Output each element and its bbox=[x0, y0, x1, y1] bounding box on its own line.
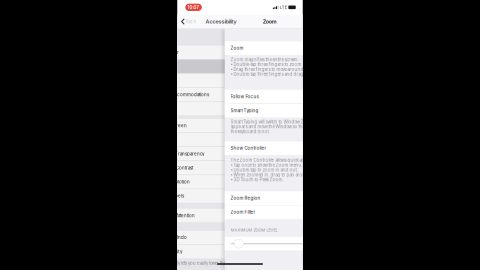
staticText: • Double-tap to zoom in and out. bbox=[231, 167, 298, 173]
staticText: Show Controller bbox=[231, 146, 267, 151]
staticText: Follow Focus bbox=[231, 94, 259, 99]
button[interactable]: Shake to Undo bbox=[150, 231, 276, 244]
staticText: Smart Typing bbox=[231, 108, 259, 113]
staticText: Increase Contrast bbox=[156, 165, 193, 170]
staticText: VoiceOver bbox=[156, 50, 179, 55]
button[interactable]: Reachability bbox=[150, 245, 276, 258]
staticText: Reachability lets you easily lower the t… bbox=[156, 261, 256, 266]
button[interactable]: Smart Typing bbox=[225, 104, 350, 117]
staticText: Speak Screen bbox=[156, 123, 187, 128]
button[interactable]: Face ID & Attention bbox=[150, 209, 276, 222]
button[interactable]: Zoom bbox=[150, 60, 276, 73]
staticText: The Zoom Controller allows quick access … bbox=[231, 158, 332, 163]
button[interactable]: VoiceOver bbox=[150, 46, 276, 59]
button[interactable]: Zoom Region bbox=[225, 191, 350, 205]
button[interactable]: Back bbox=[177, 15, 198, 28]
staticText: On/Off Labels bbox=[156, 193, 184, 199]
button[interactable]: Speech bbox=[150, 102, 276, 115]
staticText: Face ID & Attention bbox=[156, 213, 195, 218]
staticText: Zoom bbox=[263, 18, 277, 25]
button[interactable]: Reduce Transparency bbox=[150, 147, 276, 161]
staticText: 10:07 bbox=[188, 5, 200, 10]
button[interactable]: Zoom bbox=[225, 41, 350, 55]
staticText: MAXIMUM ZOOM LEVEL bbox=[231, 227, 278, 232]
button[interactable]: Follow Focus bbox=[225, 90, 350, 103]
staticText: Zoom bbox=[231, 45, 244, 51]
staticText: Shake to Undo bbox=[156, 235, 187, 240]
button[interactable]: Increase Contrast bbox=[150, 161, 276, 175]
staticText: Reachability bbox=[156, 249, 182, 254]
staticText: • Double-tap three fingers to zoom. bbox=[231, 62, 303, 67]
staticText: Zoom magnifies the entire screen: bbox=[231, 57, 299, 62]
staticText: Back bbox=[186, 19, 196, 24]
staticText: appears and move the Window so the text … bbox=[231, 124, 340, 129]
button[interactable]: Show Controller bbox=[225, 141, 350, 155]
staticText: • Double-tap three fingers and drag to c… bbox=[231, 72, 339, 77]
staticText: • Tap once to show the Zoom menu. bbox=[231, 162, 303, 168]
button[interactable]: Display Accommodations bbox=[150, 88, 276, 101]
button[interactable]: Magnifier bbox=[150, 74, 276, 87]
button[interactable]: Bold Text bbox=[150, 133, 276, 147]
staticText: • When zoomed in, drag to pan around the… bbox=[231, 172, 334, 177]
button[interactable]: Speak Screen bbox=[150, 119, 276, 133]
button[interactable]: On/Off Labels bbox=[150, 189, 276, 203]
staticText: • Drag three fingers to move around the … bbox=[231, 67, 326, 72]
staticText: LTE bbox=[280, 5, 287, 10]
button[interactable]: Reduce Motion bbox=[150, 175, 276, 189]
staticText: Reduce Motion bbox=[156, 179, 190, 185]
staticText: the keyboard is not. bbox=[231, 129, 270, 134]
staticText: Accessibility bbox=[205, 18, 236, 25]
staticText: • 3D Touch to Peek Zoom. bbox=[231, 177, 284, 182]
staticText: Display Accommodations bbox=[156, 92, 209, 97]
staticText: Zoom Filter bbox=[231, 209, 256, 215]
staticText: Smart Typing will switch to Window Zoom … bbox=[231, 119, 346, 124]
button[interactable]: Zoom Filter bbox=[225, 205, 350, 219]
staticText: Reduce Transparency bbox=[156, 151, 204, 156]
staticText: Zoom Region bbox=[231, 195, 261, 201]
